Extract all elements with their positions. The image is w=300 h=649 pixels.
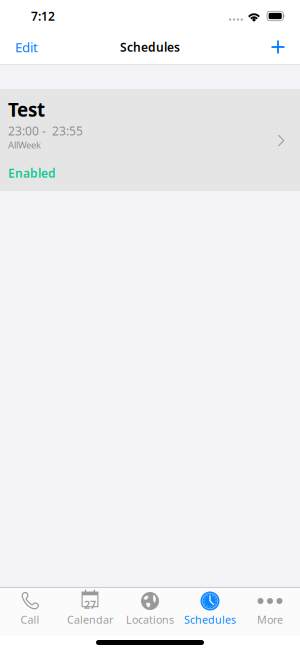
staticText: 7:12 [31, 8, 55, 24]
staticText: Test [8, 97, 45, 122]
button[interactable]: More [240, 587, 300, 636]
staticText: AllWeek [8, 139, 41, 151]
staticText: Enabled [8, 165, 56, 181]
staticText: Edit [15, 38, 38, 56]
button[interactable]: 27 [60, 587, 120, 636]
staticText: More [257, 612, 283, 627]
button[interactable]: Edit [0, 31, 50, 63]
button[interactable]: Add schedule [259, 31, 300, 63]
staticText: Locations [126, 612, 174, 627]
button[interactable]: Call [0, 587, 60, 636]
staticText: 27 [84, 597, 96, 612]
staticText: Calendar [67, 612, 113, 627]
button[interactable]: Locations [120, 587, 180, 636]
staticText: Schedules [120, 39, 180, 55]
staticText: 23:00 - 23:55 [8, 123, 83, 139]
button[interactable]: Schedules [180, 587, 240, 636]
button[interactable]: Test [0, 90, 300, 190]
staticText: Call [20, 612, 39, 627]
staticText: Schedules [184, 612, 236, 627]
